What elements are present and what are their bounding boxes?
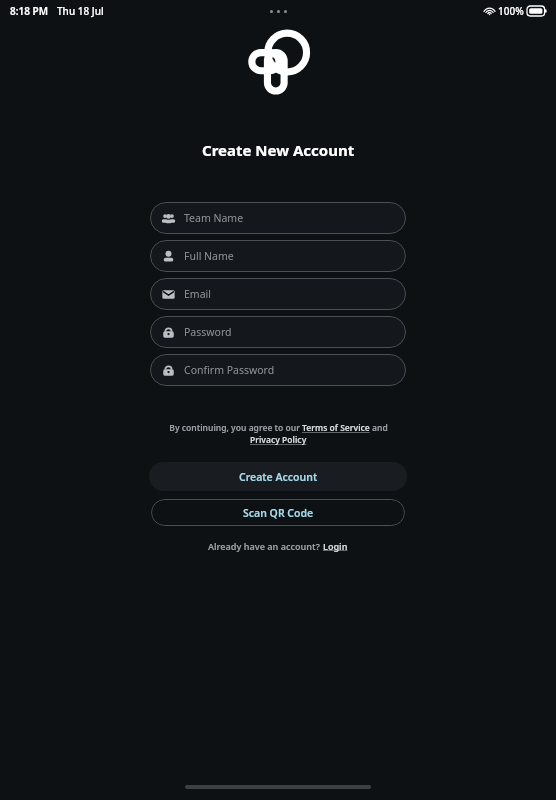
staticText: By continuing, you agree to our Terms of… [169, 422, 388, 434]
button[interactable]: Email [150, 278, 406, 310]
staticText: Already have an account? [208, 540, 323, 552]
button[interactable]: Login [323, 540, 348, 552]
staticText: Create New Account [202, 140, 355, 160]
staticText: Thu 18 Jul [57, 4, 104, 18]
staticText: Login [323, 540, 348, 552]
button[interactable]: Password [150, 316, 406, 348]
button[interactable]: Create Account [149, 462, 407, 491]
staticText: Privacy Policy [250, 434, 307, 446]
staticText: Confirm Password [184, 363, 275, 377]
staticText: Scan QR Code [243, 506, 314, 520]
button[interactable]: Privacy Policy [250, 434, 307, 446]
button[interactable]: Full Name [150, 240, 406, 272]
staticText: 8:18 PM [10, 4, 48, 18]
button[interactable]: Scan QR Code [151, 499, 405, 526]
button[interactable]: Confirm Password [150, 354, 406, 386]
staticText: Email [184, 287, 211, 301]
button[interactable]: Team Name [150, 202, 406, 234]
staticText: Password [184, 325, 232, 339]
staticText: Full Name [184, 249, 234, 263]
staticText: 100% [498, 4, 524, 18]
staticText: Create Account [239, 470, 318, 484]
staticText: Team Name [184, 211, 244, 225]
